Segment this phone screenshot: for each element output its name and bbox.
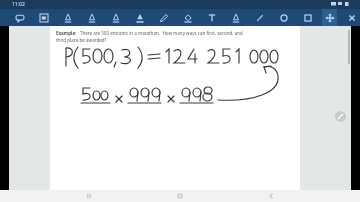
button[interactable]: Rectangle bbox=[300, 9, 315, 26]
button[interactable]: Pan bbox=[322, 9, 337, 26]
button[interactable]: Eraser bbox=[180, 9, 195, 26]
button[interactable]: Highlighter bbox=[132, 9, 147, 26]
button[interactable]: Close bbox=[344, 9, 359, 26]
button[interactable]: Pen 1 bbox=[60, 9, 75, 26]
button[interactable]: Pen 2 bbox=[84, 9, 99, 26]
button[interactable]: Text bbox=[204, 9, 219, 26]
button[interactable]: Signature bbox=[228, 9, 243, 26]
button[interactable]: Line bbox=[252, 9, 267, 26]
staticText: There are 500 entrants in a marathon. Ho… bbox=[80, 30, 243, 36]
staticText: 11:02 bbox=[12, 1, 25, 8]
button[interactable]: Image bbox=[36, 9, 51, 26]
staticText: third place be awarded? bbox=[56, 37, 107, 43]
button[interactable]: Marker bbox=[156, 9, 171, 26]
staticText: Example: bbox=[56, 30, 77, 36]
button[interactable]: Home bbox=[168, 190, 192, 202]
button[interactable]: Back bbox=[259, 190, 283, 202]
button[interactable]: Pen 3 bbox=[108, 9, 123, 26]
button[interactable]: Edit bbox=[335, 111, 346, 122]
button[interactable]: Circle bbox=[276, 9, 291, 26]
button[interactable]: Comment bbox=[12, 9, 27, 26]
button[interactable]: Recents bbox=[77, 190, 101, 202]
